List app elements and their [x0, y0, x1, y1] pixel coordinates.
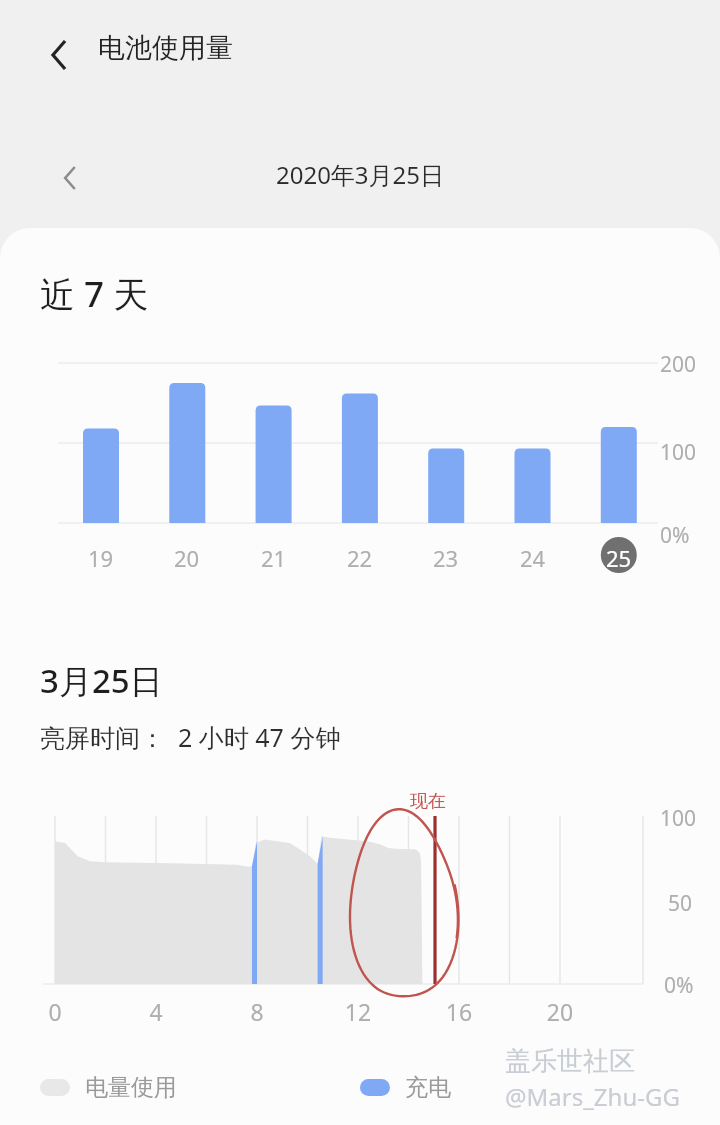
button[interactable]: 24	[507, 538, 559, 578]
staticText: 20	[174, 543, 200, 573]
button[interactable]: 20	[161, 538, 213, 578]
staticText: 200	[660, 350, 697, 379]
staticText: 亮屏时间： 2 小时 47 分钟	[40, 720, 341, 754]
staticText: 12	[344, 996, 372, 1027]
button[interactable]: 充电	[360, 1073, 459, 1102]
staticText: 0%	[660, 521, 690, 550]
staticText: 近 7 天	[40, 270, 149, 318]
staticText: 21	[261, 543, 287, 573]
staticText: 2020年3月25日	[0, 158, 720, 191]
staticText: 16	[445, 996, 473, 1027]
button[interactable]: 19	[75, 538, 127, 578]
staticText: 现在	[410, 790, 446, 813]
staticText: 充电	[405, 1073, 451, 1102]
staticText: 100	[660, 804, 697, 833]
staticText: 100	[660, 438, 697, 467]
staticText: 3月25日	[40, 658, 163, 703]
button[interactable]: 21	[248, 538, 300, 578]
button[interactable]: Previous day	[44, 152, 96, 204]
staticText: 盖乐世社区	[505, 1045, 635, 1078]
staticText: 24	[520, 543, 546, 573]
staticText: 0%	[664, 971, 694, 1000]
staticText: 22	[347, 543, 373, 573]
staticText: 0	[41, 996, 69, 1027]
staticText: 25	[606, 543, 632, 573]
button[interactable]: 25	[593, 538, 645, 578]
button[interactable]: 23	[420, 538, 472, 578]
staticText: 19	[88, 543, 114, 573]
staticText: 电量使用	[85, 1073, 177, 1102]
staticText: 4	[142, 996, 170, 1027]
staticText: @Mars_Zhu-GG	[505, 1080, 680, 1113]
button[interactable]: 22	[334, 538, 386, 578]
staticText: 电池使用量	[98, 31, 233, 65]
button[interactable]: 电量使用	[40, 1073, 185, 1102]
button[interactable]: Back	[30, 26, 88, 84]
staticText: 20	[546, 996, 574, 1027]
staticText: 23	[433, 543, 459, 573]
staticText: 50	[668, 889, 693, 918]
staticText: 8	[243, 996, 271, 1027]
